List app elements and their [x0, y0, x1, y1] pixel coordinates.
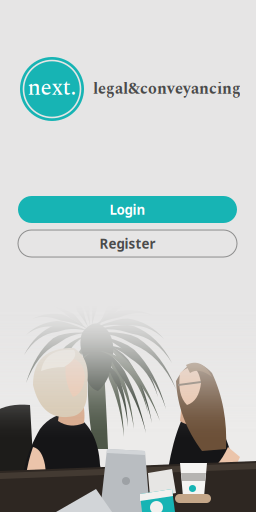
- button[interactable]: Register: [18, 230, 237, 257]
- staticText: Login: [109, 201, 145, 218]
- staticText: Register: [99, 235, 155, 252]
- button[interactable]: Login: [18, 196, 237, 223]
- staticText: legal&conveyancing: [93, 77, 241, 101]
- staticText: next.: [27, 71, 76, 105]
